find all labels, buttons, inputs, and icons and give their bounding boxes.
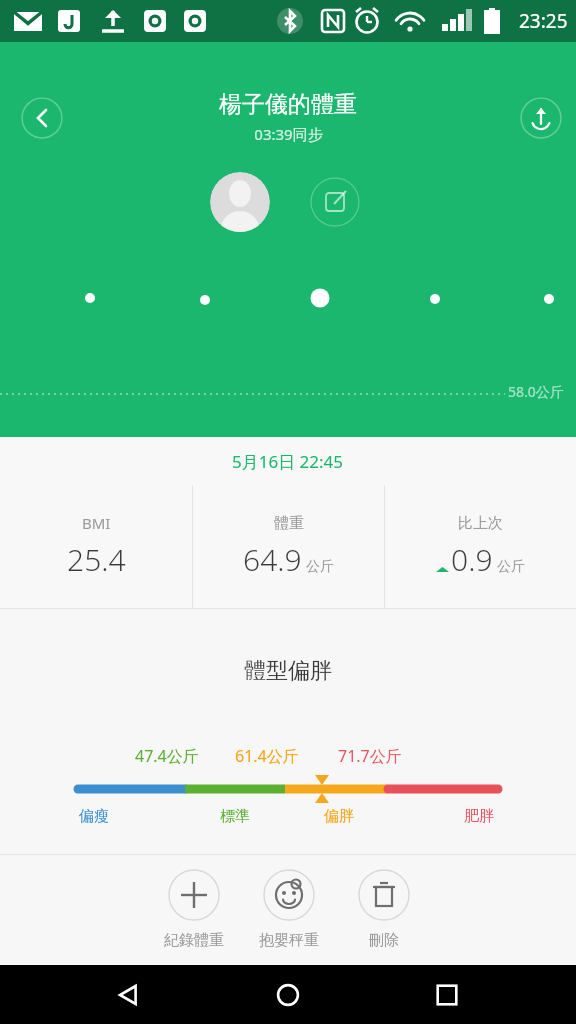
button[interactable]: Recents	[417, 965, 477, 1024]
staticText: 肥胖	[464, 807, 494, 826]
button[interactable]: 抱嬰秤重	[241, 855, 336, 950]
staticText: 體型偏胖	[244, 657, 332, 685]
staticText: BMI	[82, 513, 111, 533]
staticText: 03:39同步	[254, 124, 323, 144]
button[interactable]: 刪除	[336, 855, 431, 950]
staticText: 紀錄體重	[164, 931, 224, 950]
button[interactable]: 比上次	[385, 485, 576, 608]
staticText: 公斤	[497, 558, 525, 576]
button[interactable]: Profile photo	[210, 172, 270, 232]
button[interactable]: 5月16日 22:45	[0, 437, 576, 485]
staticText: 5月16日 22:45	[232, 450, 344, 473]
staticText: 公斤	[306, 558, 334, 576]
staticText: 25.4	[67, 539, 126, 580]
staticText: 47.4公斤	[135, 745, 199, 767]
staticText: 刪除	[369, 931, 399, 950]
staticText: 64.9	[243, 539, 302, 580]
button[interactable]: 體重	[193, 485, 384, 608]
staticText: 61.4公斤	[235, 745, 299, 767]
staticText: 抱嬰秤重	[259, 931, 319, 950]
button[interactable]: Sync	[520, 97, 562, 139]
staticText: 偏胖	[324, 807, 354, 826]
staticText: 23:25	[519, 8, 568, 34]
staticText: 0.9	[451, 539, 493, 580]
staticText: 71.7公斤	[338, 745, 402, 767]
button[interactable]: Back	[21, 97, 63, 139]
staticText: 體重	[274, 514, 304, 533]
button[interactable]: Edit	[310, 177, 360, 227]
button[interactable]: Home	[258, 965, 318, 1024]
staticText: 比上次	[458, 514, 503, 533]
button[interactable]: BMI	[0, 485, 192, 608]
staticText: 楊子儀的體重	[219, 90, 357, 119]
staticText: 標準	[220, 807, 250, 826]
button[interactable]: 紀錄體重	[146, 855, 241, 950]
button[interactable]: Back	[99, 965, 159, 1024]
staticText: 58.0公斤	[508, 382, 564, 401]
staticText: 偏瘦	[79, 807, 109, 826]
